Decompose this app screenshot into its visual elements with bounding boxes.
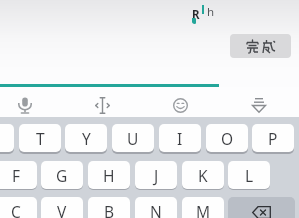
button[interactable] [1, 92, 49, 118]
staticText: K [198, 165, 208, 186]
button[interactable]: V [41, 197, 83, 218]
button[interactable]: Y [65, 124, 107, 152]
staticText: T [36, 128, 45, 149]
button[interactable]: I [159, 124, 201, 152]
button[interactable] [156, 92, 204, 118]
button[interactable]: C [0, 197, 37, 218]
button[interactable] [228, 197, 295, 218]
button[interactable] [235, 92, 283, 118]
staticText: J [154, 165, 159, 186]
staticText: B [104, 201, 115, 218]
staticText: C [11, 201, 21, 218]
button[interactable]: L [228, 161, 270, 189]
staticText: F [12, 165, 21, 186]
button[interactable] [78, 92, 126, 118]
staticText: Y [82, 128, 91, 149]
staticText: U [127, 128, 139, 149]
staticText: R [192, 7, 200, 23]
button[interactable]: B [88, 197, 130, 218]
button[interactable]: G [41, 161, 83, 189]
staticText: P [268, 128, 278, 149]
staticText: h [207, 4, 215, 20]
staticText: L [245, 165, 254, 186]
staticText: M [196, 201, 211, 218]
button[interactable]: T [19, 124, 61, 152]
button[interactable] [0, 124, 14, 152]
button[interactable]: U [112, 124, 154, 152]
staticText: G [56, 165, 68, 186]
button[interactable]: N [135, 197, 177, 218]
staticText: N [150, 201, 162, 218]
button[interactable] [230, 34, 291, 58]
button[interactable]: F [0, 161, 37, 189]
staticText: V [57, 201, 67, 218]
button[interactable]: O [206, 124, 248, 152]
staticText: O [221, 128, 234, 149]
staticText: H [103, 165, 115, 186]
button[interactable]: K [182, 161, 224, 189]
staticText: I [177, 128, 183, 149]
button[interactable]: H [88, 161, 130, 189]
button[interactable]: J [135, 161, 177, 189]
button[interactable]: P [252, 124, 294, 152]
button[interactable]: M [182, 197, 224, 218]
